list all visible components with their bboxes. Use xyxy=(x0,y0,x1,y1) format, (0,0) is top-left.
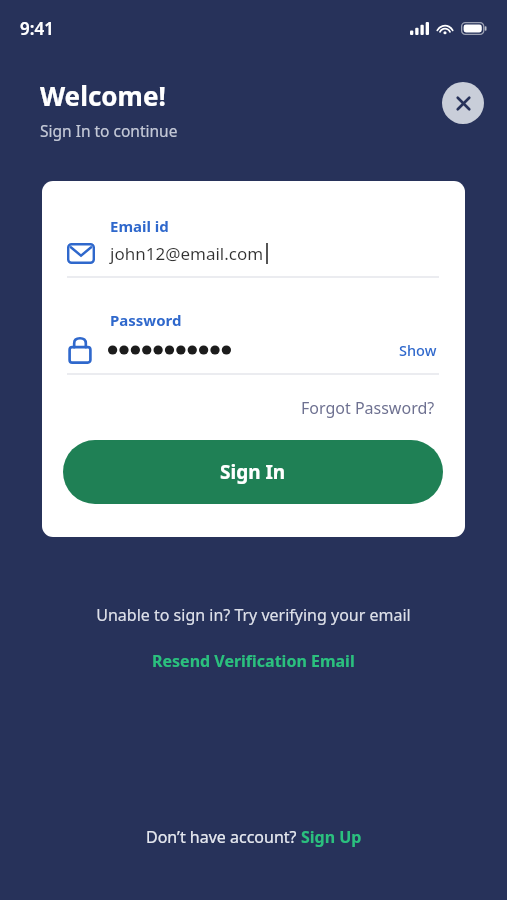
button[interactable]: Close xyxy=(442,82,484,124)
button[interactable]: Sign Up xyxy=(301,823,362,851)
button[interactable]: Show xyxy=(397,338,439,362)
staticText: Sign Up xyxy=(301,826,362,848)
button[interactable]: Resend Verification Email xyxy=(144,646,363,676)
staticText: 9:41 xyxy=(20,17,54,40)
staticText: Email id xyxy=(110,216,169,236)
button[interactable]: Sign In xyxy=(63,440,443,504)
staticText: Unable to sign in? Try verifying your em… xyxy=(96,604,411,626)
staticText: Sign In xyxy=(220,459,286,485)
button[interactable]: Forgot Password? xyxy=(297,393,439,423)
staticText: Don’t have account? xyxy=(146,826,301,848)
staticText: Show xyxy=(399,340,437,360)
staticText: john12@email.com xyxy=(110,242,264,265)
staticText: Password xyxy=(110,310,182,330)
button[interactable]: Email id xyxy=(42,181,465,278)
staticText: Sign In to continue xyxy=(40,120,178,141)
staticText: Welcome! xyxy=(40,78,166,113)
staticText: Forgot Password? xyxy=(301,397,435,419)
button[interactable]: Password xyxy=(42,278,465,375)
staticText: Resend Verification Email xyxy=(152,650,355,672)
